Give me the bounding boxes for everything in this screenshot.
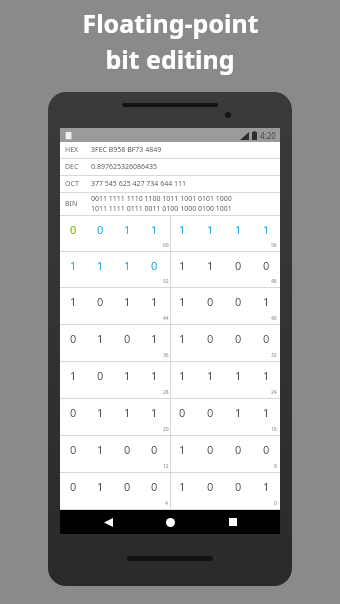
button[interactable]: 0 [60,399,87,426]
staticText: 0 [235,294,242,309]
staticText: 1 [124,405,131,420]
button[interactable]: 0 [114,325,141,352]
staticText: 1 [70,258,77,273]
button[interactable]: 1 [114,252,141,278]
button[interactable]: 1 [87,399,114,426]
staticText: 0 [207,331,214,346]
button[interactable]: 1 [114,362,141,389]
staticText: 0 [207,442,214,457]
button[interactable]: 0 [60,216,87,242]
button[interactable]: 0 [224,252,252,278]
button[interactable]: 1 [168,473,196,500]
button[interactable]: 1 [141,216,168,242]
button[interactable]: BIN [60,193,280,215]
button[interactable]: 0 [87,288,114,315]
staticText: 8 [274,463,277,470]
button[interactable]: 1 [168,216,196,242]
button[interactable]: Recents [218,510,248,534]
button[interactable]: 0 [87,216,114,242]
button[interactable]: 0 [196,325,224,352]
staticText: 4 [165,500,168,507]
staticText: 20 [163,426,169,433]
button[interactable]: 1 [87,473,114,500]
button[interactable]: Back [93,510,123,534]
button[interactable]: 0 [114,436,141,463]
button[interactable]: DEC [60,159,280,175]
button[interactable]: 0 [168,399,196,426]
button[interactable]: 1 [141,325,168,352]
button[interactable]: 1 [114,399,141,426]
button[interactable]: 1 [196,252,224,278]
button[interactable]: 0 [196,399,224,426]
staticText: 0 [235,258,242,273]
button[interactable]: 0 [196,473,224,500]
staticText: 1 [179,258,186,273]
button[interactable]: 1 [252,399,280,426]
staticText: 1 [124,222,131,237]
staticText: 48 [271,278,277,285]
button[interactable]: 1 [60,252,87,278]
button[interactable]: 0 [87,362,114,389]
button[interactable]: 1 [168,436,196,463]
button[interactable]: 1 [87,325,114,352]
button[interactable]: 1 [168,362,196,389]
staticText: 0 [124,442,131,457]
button[interactable]: 1 [168,252,196,278]
button[interactable]: 0 [114,473,141,500]
button[interactable]: Home [155,510,185,534]
button[interactable]: 1 [141,399,168,426]
button[interactable]: HEX [60,142,280,158]
button[interactable]: 0 [196,436,224,463]
button[interactable]: 1 [196,216,224,242]
staticText: 0.897625326086435 [91,162,157,172]
button[interactable]: 1 [168,325,196,352]
staticText: bit editing [105,42,235,76]
staticText: 1011 1111 0111 0011 0100 1000 0100 1001 [91,204,232,214]
staticText: 1 [263,222,270,237]
button[interactable]: 1 [252,473,280,500]
button[interactable]: 1 [252,362,280,389]
button[interactable]: 1 [196,362,224,389]
button[interactable]: 0 [60,473,87,500]
staticText: 1 [70,294,77,309]
staticText: 0 [235,479,242,494]
staticText: 16 [271,426,277,433]
staticText: 24 [271,389,277,396]
button[interactable]: 1 [114,216,141,242]
button[interactable]: 1 [87,436,114,463]
staticText: 1 [179,222,186,237]
button[interactable]: 0 [224,325,252,352]
staticText: 1 [207,258,214,273]
staticText: 0 [151,479,158,494]
button[interactable]: 1 [252,216,280,242]
button[interactable]: 1 [141,362,168,389]
button[interactable]: 1 [114,288,141,315]
staticText: HEX [65,145,91,155]
button[interactable]: 0 [224,288,252,315]
button[interactable]: 0 [224,436,252,463]
staticText: Floating-point [82,6,259,40]
button[interactable]: 1 [224,216,252,242]
button[interactable]: 0 [252,252,280,278]
button[interactable]: 0 [60,436,87,463]
staticText: 1 [263,405,270,420]
button[interactable]: 0 [141,252,168,278]
button[interactable]: 0 [141,436,168,463]
button[interactable]: 0 [252,325,280,352]
button[interactable]: 1 [168,288,196,315]
button[interactable]: 1 [87,252,114,278]
staticText: OCT [65,179,91,189]
button[interactable]: OCT [60,176,280,192]
button[interactable]: 1 [224,362,252,389]
button[interactable]: 0 [224,473,252,500]
button[interactable]: 1 [252,288,280,315]
staticText: 0 [70,479,77,494]
button[interactable]: 0 [141,473,168,500]
button[interactable]: 0 [252,436,280,463]
button[interactable]: 1 [141,288,168,315]
button[interactable]: 1 [60,288,87,315]
button[interactable]: 0 [60,325,87,352]
button[interactable]: 0 [196,288,224,315]
button[interactable]: 1 [60,362,87,389]
button[interactable]: 1 [224,399,252,426]
